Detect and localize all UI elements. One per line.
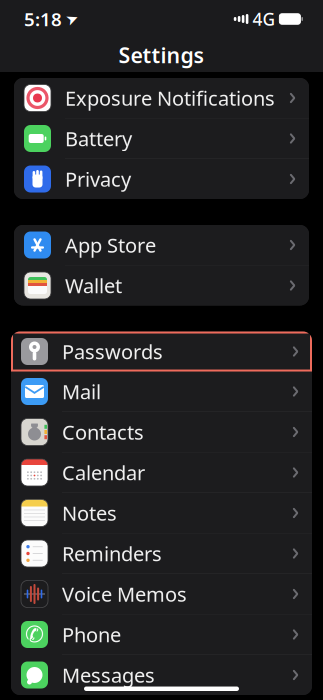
button[interactable]: ✆ [11, 614, 312, 655]
button[interactable]: Calendar [11, 452, 312, 493]
button[interactable]: Messages [11, 655, 312, 695]
button[interactable]: Notes [11, 493, 312, 533]
button[interactable]: App Store [14, 225, 309, 265]
staticText: Contacts [62, 419, 144, 445]
button[interactable]: Contacts [11, 412, 312, 452]
staticText: Settings [118, 41, 204, 69]
staticText: ➤ [66, 11, 78, 27]
staticText: Calendar [62, 459, 145, 486]
staticText: ✆ [25, 622, 44, 647]
staticText: App Store [65, 232, 156, 258]
staticText: Messages [62, 662, 155, 688]
staticText: Passwords [62, 338, 163, 365]
staticText: 5:18 [24, 7, 62, 31]
staticText: 4G [252, 7, 275, 30]
button[interactable]: Passwords [11, 331, 312, 371]
button[interactable]: Exposure Notifications [14, 78, 309, 118]
button[interactable]: Mail [11, 371, 312, 412]
staticText: Exposure Notifications [65, 85, 275, 111]
staticText: Wallet [65, 272, 122, 299]
button[interactable]: Voice Memos [11, 574, 312, 614]
staticText: Privacy [65, 166, 131, 192]
staticText: Voice Memos [62, 581, 187, 607]
button[interactable]: Battery [14, 118, 309, 159]
staticText: Phone [62, 621, 121, 648]
staticText: Notes [62, 500, 117, 526]
button[interactable]: Wallet [14, 265, 309, 305]
staticText: Reminders [62, 540, 162, 567]
button[interactable]: Reminders [11, 533, 312, 574]
button[interactable]: Privacy [14, 159, 309, 199]
staticText: Mail [62, 378, 101, 405]
staticText: Battery [65, 125, 132, 152]
